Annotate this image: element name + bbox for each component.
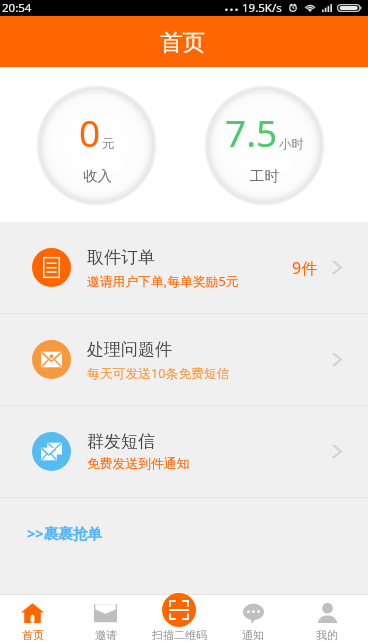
button[interactable]: >>裹裹抢单 xyxy=(24,520,106,546)
staticText: 我的 xyxy=(316,628,338,642)
staticText: 免费发送到件通知 xyxy=(87,456,190,472)
staticText: 扫描二维码 xyxy=(152,628,207,642)
staticText: 邀请用户下单,每单奖励5元 xyxy=(87,272,239,289)
staticText: 工时 xyxy=(250,167,279,185)
button[interactable]: 取件订单 xyxy=(0,222,368,313)
button[interactable]: 我的 xyxy=(290,588,364,642)
staticText: 0 xyxy=(79,107,101,157)
staticText: 群发短信 xyxy=(87,431,155,452)
staticText: 通知 xyxy=(242,628,264,642)
button[interactable]: 群发短信 xyxy=(0,406,368,497)
staticText: 首页 xyxy=(22,628,44,642)
staticText: 小时 xyxy=(279,136,304,152)
staticText: 7.5 xyxy=(225,107,278,157)
staticText: 处理问题件 xyxy=(87,339,172,360)
button[interactable]: 通知 xyxy=(216,588,290,642)
staticText: >>裹裹抢单 xyxy=(27,523,103,543)
button[interactable]: 首页 xyxy=(0,588,69,642)
staticText: 9件 xyxy=(292,257,318,279)
staticText: 元 xyxy=(102,136,115,152)
button[interactable]: 0 xyxy=(36,84,157,205)
button[interactable]: 处理问题件 xyxy=(0,314,368,405)
staticText: 取件订单 xyxy=(87,247,155,268)
staticText: 19.5K/s xyxy=(242,0,282,15)
staticText: 20:54 xyxy=(2,0,32,15)
button[interactable]: 7.5 xyxy=(204,84,325,205)
staticText: 每天可发送10条免费短信 xyxy=(87,364,230,381)
staticText: 首页 xyxy=(160,28,205,56)
other: 扫描二维码 xyxy=(162,593,196,627)
staticText: 邀请 xyxy=(95,628,117,642)
button[interactable]: 邀请 xyxy=(69,588,142,642)
staticText: 收入 xyxy=(83,167,112,185)
button[interactable]: 扫描二维码 xyxy=(142,588,216,642)
